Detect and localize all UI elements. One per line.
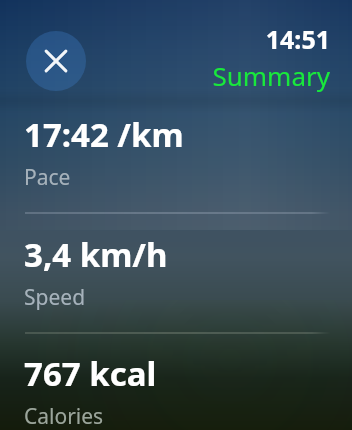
staticText: Summary (212, 58, 330, 93)
staticText: Calories (24, 402, 104, 430)
button[interactable]: Close (26, 31, 86, 91)
staticText: Pace (24, 163, 71, 192)
staticText: Speed (24, 283, 86, 312)
button[interactable]: 3,4 km/h (0, 232, 352, 332)
staticText: 14:51 (265, 22, 330, 56)
staticText: 17:42 /km (24, 112, 184, 157)
button[interactable]: 17:42 /km (0, 112, 352, 212)
staticText: 3,4 km/h (24, 232, 168, 277)
button[interactable]: 767 kcal (0, 351, 352, 430)
staticText: 767 kcal (24, 351, 157, 396)
